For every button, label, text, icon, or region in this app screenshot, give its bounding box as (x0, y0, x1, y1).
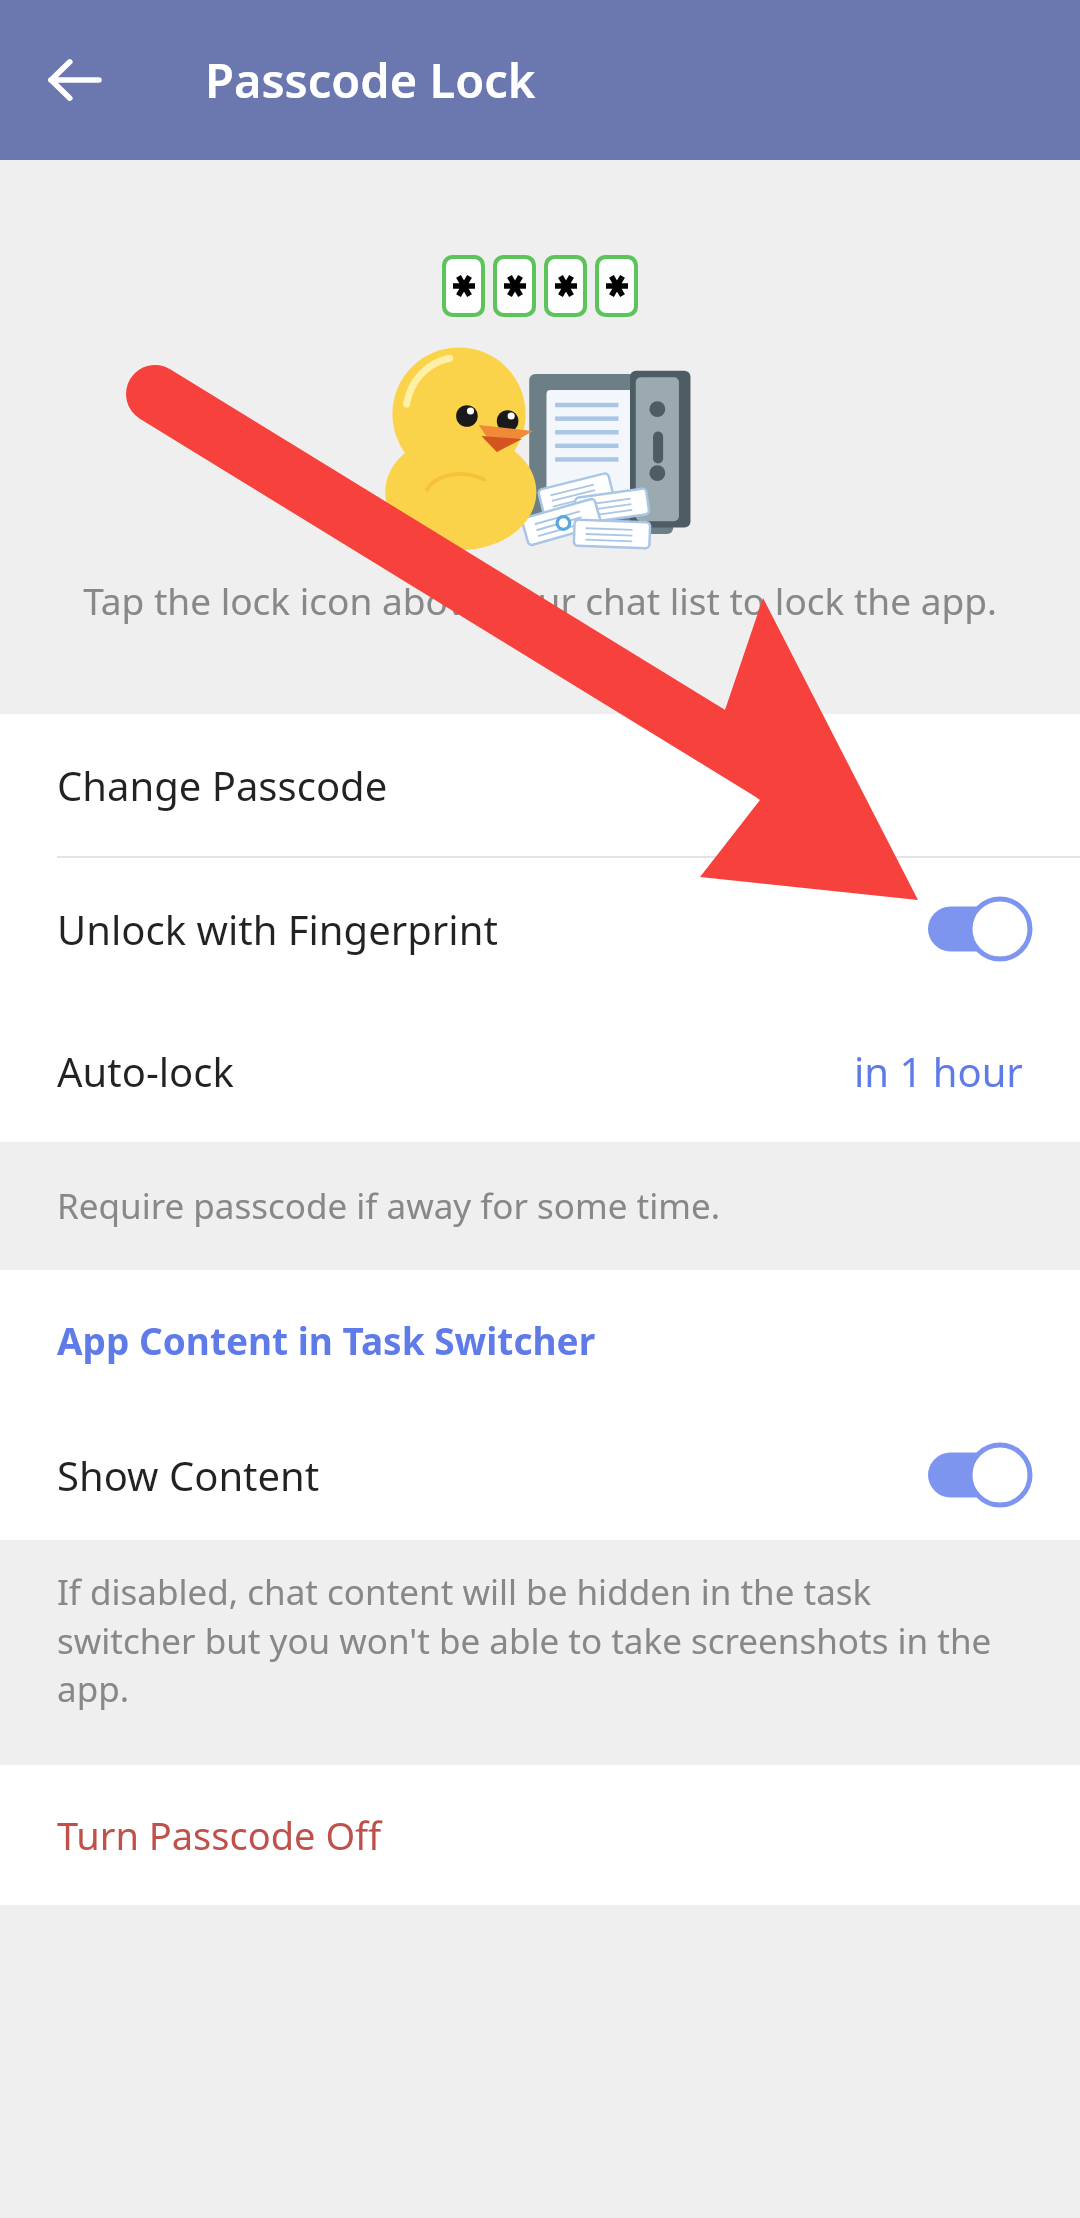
staticText: Turn Passcode Off (57, 1809, 382, 1861)
button[interactable]: Turn Passcode Off (0, 1765, 1080, 1905)
button[interactable]: Back (26, 32, 122, 128)
staticText: in 1 hour (854, 1044, 1023, 1098)
staticText: Passcode Lock (205, 48, 536, 112)
staticText: Change Passcode (57, 758, 388, 812)
staticText: Require passcode if away for some time. (57, 1182, 721, 1230)
button[interactable]: Auto-lock (0, 1000, 1080, 1142)
staticText: If disabled, chat content will be hidden… (57, 1568, 1010, 1712)
button[interactable]: Change Passcode (0, 714, 1080, 856)
staticText: App Content in Task Switcher (57, 1315, 596, 1365)
staticText: Tap the lock icon above your chat list t… (83, 575, 997, 625)
staticText: Show Content (57, 1448, 320, 1502)
button[interactable]: Unlock with Fingerprint (0, 858, 1080, 1000)
staticText: Auto-lock (57, 1044, 234, 1098)
staticText: Unlock with Fingerprint (57, 902, 498, 956)
button[interactable]: Show Content (0, 1410, 1080, 1540)
